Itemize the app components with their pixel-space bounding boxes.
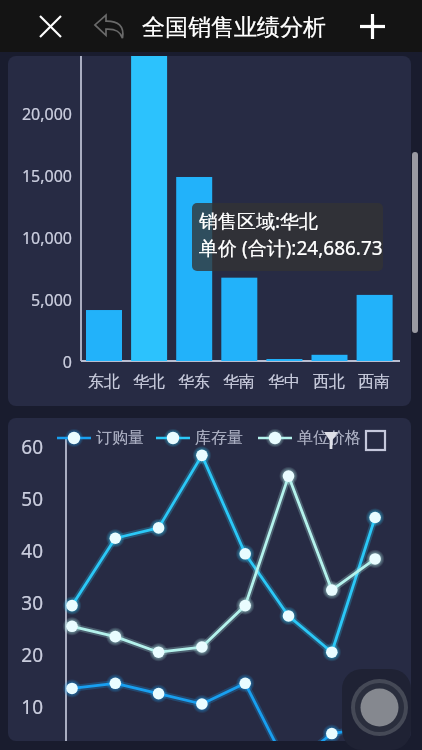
staticText: 华中	[264, 372, 304, 392]
staticText: 华南	[219, 372, 259, 392]
button[interactable]: Add	[352, 6, 392, 46]
staticText: 库存量	[195, 428, 243, 448]
staticText: 华北	[129, 372, 169, 392]
staticText: 东北	[84, 372, 124, 392]
button[interactable]: Select	[366, 431, 385, 450]
staticText: 10	[8, 694, 43, 720]
staticText: 西北	[309, 372, 349, 392]
staticText: 50	[8, 486, 43, 512]
button[interactable]: Close	[30, 6, 70, 46]
staticText: 40	[8, 538, 43, 564]
staticText: 20	[8, 642, 43, 668]
staticText: 西南	[354, 372, 394, 392]
staticText: 销售区域:华北	[199, 208, 319, 234]
staticText: 60	[8, 434, 43, 460]
button[interactable]: Undo	[89, 6, 129, 46]
button[interactable]: 订购量	[57, 428, 144, 448]
staticText: 20,000	[8, 103, 72, 125]
button[interactable]: 库存量	[156, 428, 243, 448]
staticText: 5,000	[8, 289, 72, 311]
staticText: 全国销售业绩分析	[142, 13, 326, 42]
staticText: 华东	[174, 372, 214, 392]
staticText: 30	[8, 590, 43, 616]
staticText: 单价 (合计):24,686.73	[199, 235, 383, 261]
button[interactable]: 单位价格	[258, 428, 361, 448]
staticText: 10,000	[8, 227, 72, 249]
staticText: 15,000	[8, 165, 72, 187]
staticText: 订购量	[96, 428, 144, 448]
staticText: 0	[8, 351, 72, 373]
button[interactable]: Assistive touch	[342, 669, 411, 750]
staticText: 单位价格	[297, 428, 361, 448]
